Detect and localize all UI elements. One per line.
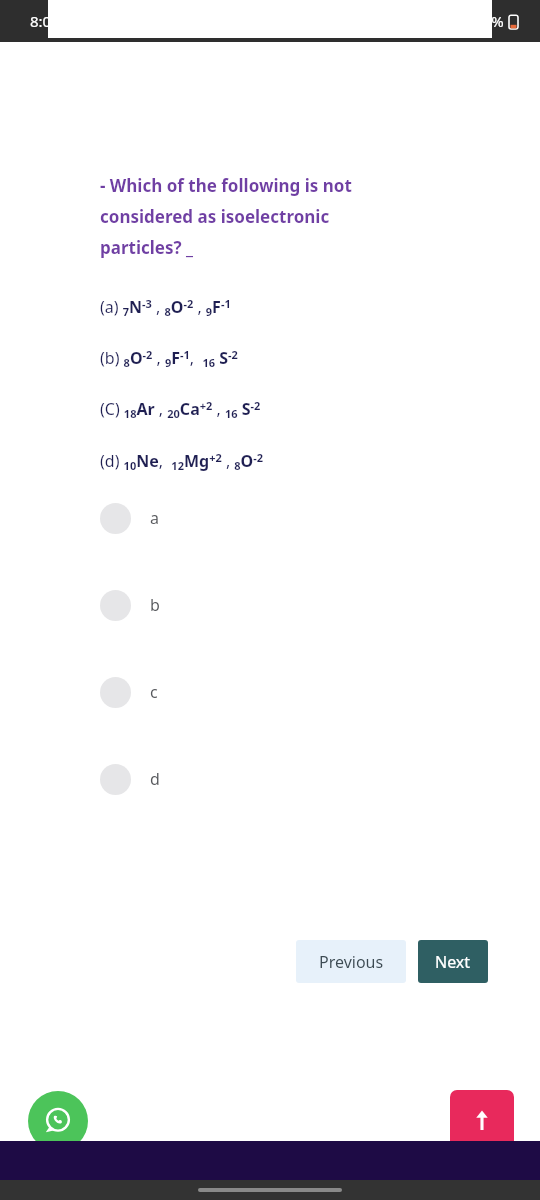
staticText: c xyxy=(150,681,158,703)
staticText: - Which of the following is not consider… xyxy=(100,174,352,259)
staticText: Previous xyxy=(319,951,384,973)
staticText: 8:00 xyxy=(30,11,60,31)
staticText: (d) 10Ne, 12Mg+2 , 8O-2 xyxy=(100,450,264,474)
staticText: (a) 7N-3 , 8O-2 , 9F-1 xyxy=(100,296,231,320)
staticText: d xyxy=(150,768,160,790)
button[interactable]: Next xyxy=(418,940,488,983)
staticText: (b) 8O-2 , 9F-1, 16 S-2 xyxy=(100,347,238,371)
staticText: a xyxy=(150,507,159,529)
button[interactable]: Previous xyxy=(296,940,406,983)
button[interactable]: a xyxy=(100,500,360,536)
staticText: b xyxy=(150,594,160,616)
staticText: 10% xyxy=(474,11,504,31)
button[interactable]: b xyxy=(100,587,360,623)
button[interactable]: Chat on WhatsApp xyxy=(28,1091,88,1151)
button[interactable]: Scroll to top xyxy=(450,1090,514,1152)
button[interactable]: d xyxy=(100,761,360,797)
staticText: Next xyxy=(435,951,471,973)
button[interactable]: c xyxy=(100,674,360,710)
staticText: (C) 18Ar , 20Ca+2 , 16 S-2 xyxy=(100,398,261,422)
